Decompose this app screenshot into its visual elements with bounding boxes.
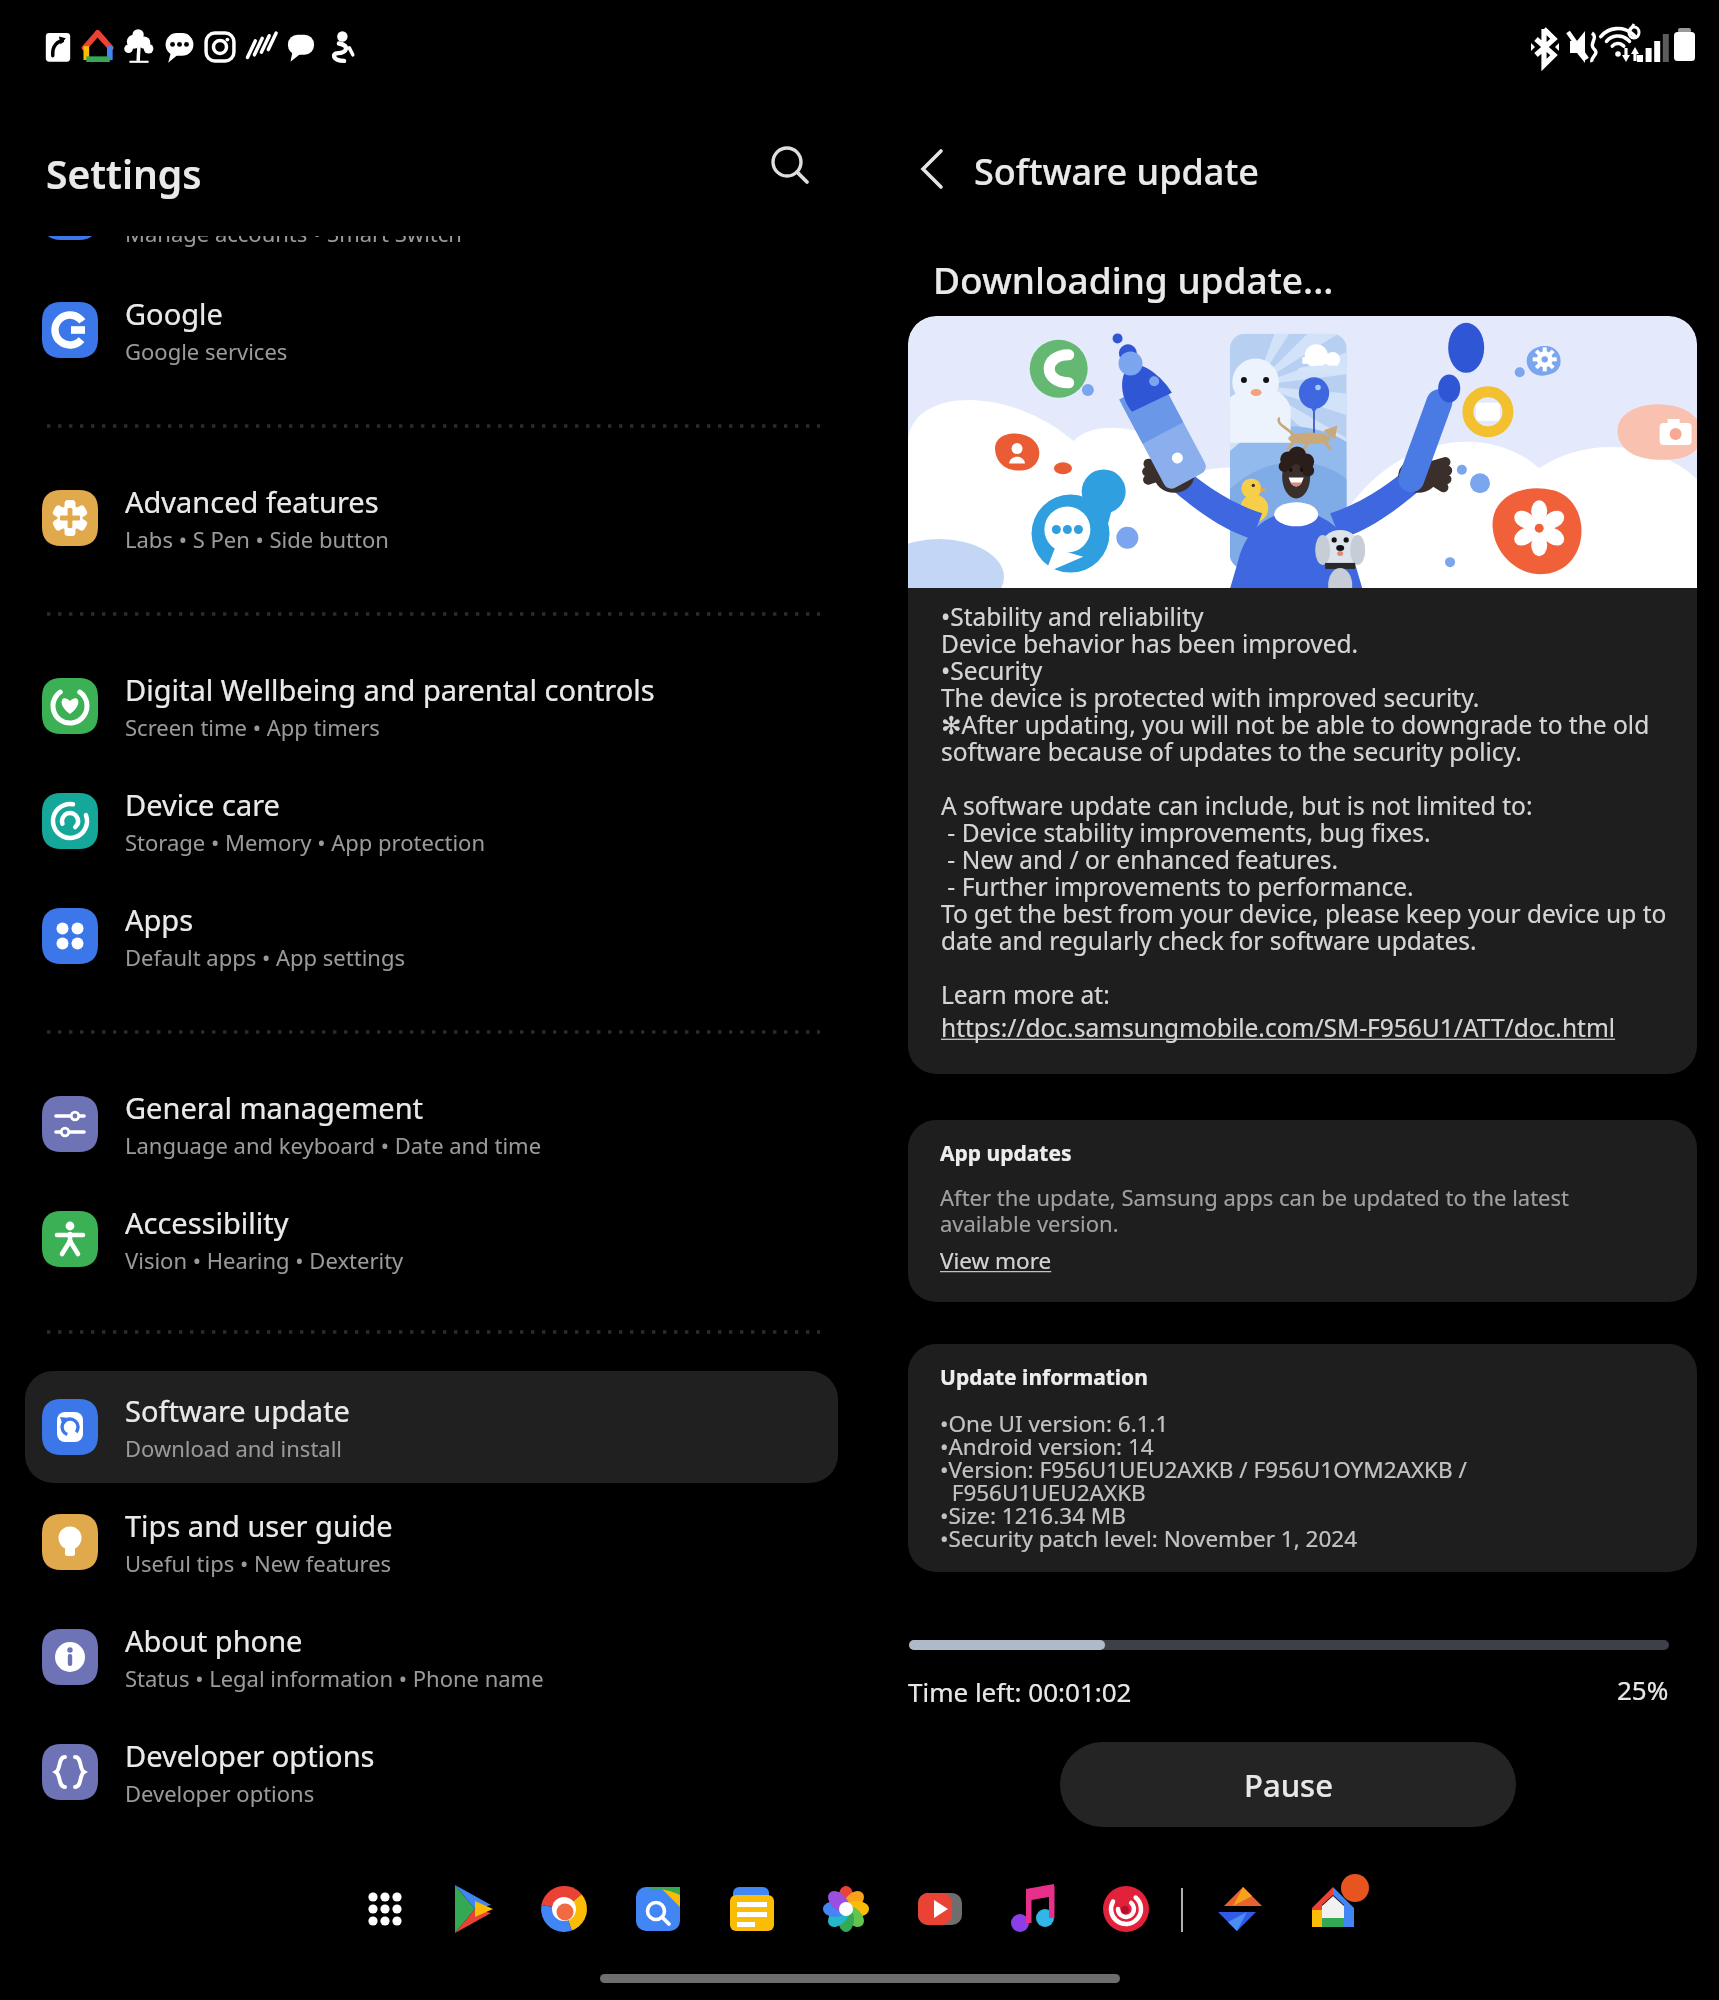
button[interactable] [25,1371,838,1483]
staticText: Google [125,294,223,333]
button[interactable]: Google Tasks [1198,1867,1282,1951]
staticText: Tips and user guide [125,1506,393,1545]
staticText: View more [940,1245,1052,1276]
staticText: •One UI version: 6.1.1 •Android version:… [940,1408,1467,1554]
button[interactable]: Search [757,133,825,201]
staticText: Accessibility [125,1203,289,1242]
staticText: Storage • Memory • App protection [125,827,485,857]
staticText: Software update [125,1391,350,1430]
button[interactable]: Google Home [1292,1867,1376,1951]
button[interactable]: Play Store [429,1867,513,1951]
button[interactable]: Apps list [343,1867,427,1951]
button[interactable]: Accounts and backup [0,166,880,258]
staticText: Accounts and backup [125,176,416,215]
button[interactable]: Google Files [616,1867,700,1951]
staticText: After the update, Samsung apps can be up… [940,1182,1570,1239]
button[interactable]: YouTube [898,1867,982,1951]
staticText: Update information [940,1363,1148,1392]
button[interactable]: Apps [0,890,880,982]
button[interactable]: Chrome [522,1867,606,1951]
button[interactable]: Tips and user guide [0,1496,880,1588]
staticText: App updates [940,1139,1072,1168]
staticText: 25% [1617,1672,1669,1707]
staticText: Settings [46,147,202,200]
button[interactable]: About phone [0,1611,880,1703]
staticText: Manage accounts • Smart Switch [125,218,462,248]
button[interactable]: General management [0,1078,880,1170]
staticText: Status • Legal information • Phone name [125,1663,544,1693]
button[interactable]: Developer options [0,1726,880,1818]
staticText: Useful tips • New features [125,1548,392,1578]
staticText: Time left: 00:01:02 [908,1674,1132,1709]
staticText: Language and keyboard • Date and time [125,1130,542,1160]
staticText: Digital Wellbeing and parental controls [125,670,655,709]
staticText: Device care [125,785,280,824]
staticText: •Stability and reliability Device behavi… [941,600,1683,1011]
staticText: Download and install [125,1433,343,1463]
button[interactable]: Google [0,284,880,376]
staticText: Default apps • App settings [125,942,405,972]
button[interactable]: View more [940,1245,1052,1276]
staticText: Advanced features [125,482,379,521]
button[interactable]: Digital Wellbeing and parental controls [0,660,880,752]
staticText: Pause [1244,1764,1333,1806]
staticText: Vision • Hearing • Dexterity [125,1245,404,1275]
staticText: Software update [974,147,1259,196]
staticText: Google services [125,336,288,366]
button[interactable]: Google Keep [710,1867,794,1951]
button[interactable]: Advanced features [0,472,880,564]
button[interactable]: Accessibility [0,1193,880,1285]
staticText: About phone [125,1621,303,1660]
staticText: Developer options [125,1778,315,1808]
button[interactable]: Google Photos [804,1867,888,1951]
button[interactable]: Pause [1060,1742,1516,1827]
staticText: Downloading update... [933,254,1334,304]
staticText: Developer options [125,1736,375,1775]
button[interactable]: Music [991,1867,1075,1951]
button[interactable]: Back [898,134,968,204]
staticText: Apps [125,900,194,939]
staticText: https://doc.samsungmobile.com/SM-F956U1/… [941,1011,1616,1044]
button[interactable]: Pocket Casts [1084,1867,1168,1951]
staticText: General management [125,1088,424,1127]
staticText: Labs • S Pen • Side button [125,524,389,554]
staticText: Screen time • App timers [125,712,380,742]
button[interactable]: Device care [0,775,880,867]
